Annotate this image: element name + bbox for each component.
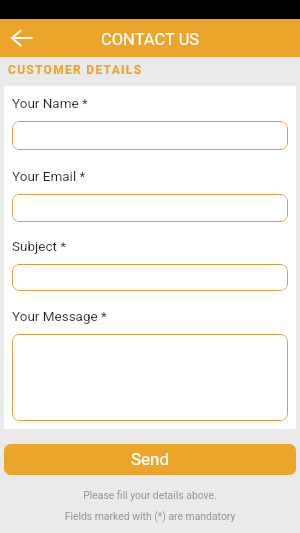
button[interactable] xyxy=(12,121,288,150)
button[interactable] xyxy=(12,264,288,291)
button[interactable] xyxy=(12,334,288,421)
button[interactable]: Back xyxy=(0,20,37,57)
button[interactable] xyxy=(12,194,288,222)
staticText: Your Message * xyxy=(12,308,107,324)
staticText: Your Email * xyxy=(12,168,86,184)
button[interactable]: Send xyxy=(4,444,296,475)
staticText: Please fill your details above. xyxy=(0,489,300,501)
staticText: Subject * xyxy=(12,238,67,254)
staticText: Fields marked with (*) are mandatory xyxy=(0,510,300,522)
staticText: CONTACT US xyxy=(101,30,200,49)
staticText: CUSTOMER DETAILS xyxy=(8,63,143,77)
staticText: Send xyxy=(131,449,170,469)
staticText: Your Name * xyxy=(12,95,88,111)
